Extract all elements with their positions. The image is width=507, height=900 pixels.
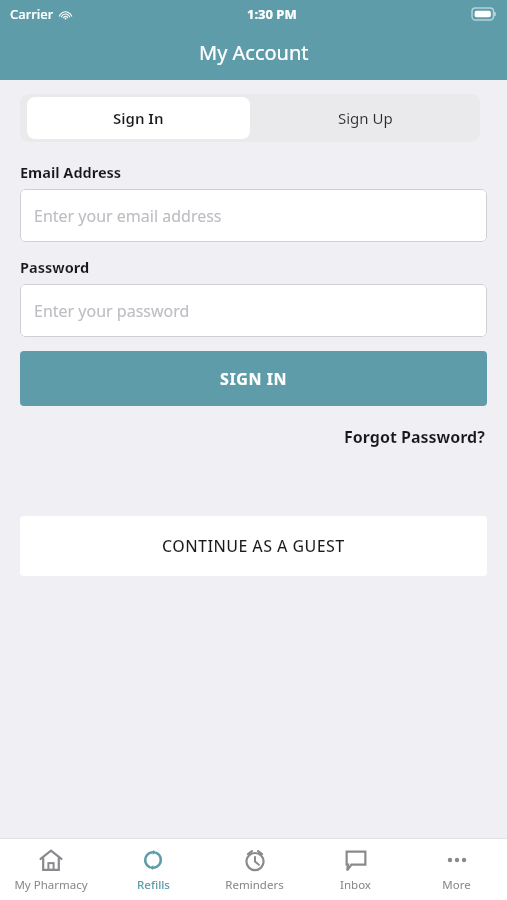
button[interactable]: Enter your password (20, 284, 487, 337)
button[interactable]: Enter your email address (20, 189, 487, 242)
button[interactable]: Reminders (204, 839, 305, 900)
staticText: SIGN IN (220, 368, 288, 390)
button[interactable]: Inbox (305, 839, 406, 900)
staticText: Reminders (225, 877, 284, 893)
staticText: Email Address (20, 162, 122, 182)
staticText: My Pharmacy (14, 877, 88, 893)
staticText: Password (20, 257, 90, 277)
staticText: Sign Up (338, 108, 393, 128)
staticText: Inbox (340, 877, 371, 893)
staticText: Enter your password (34, 300, 190, 322)
button[interactable]: Sign In (27, 97, 250, 139)
button[interactable]: CONTINUE AS A GUEST (20, 516, 487, 576)
staticText: Carrier (10, 5, 54, 23)
staticText: CONTINUE AS A GUEST (162, 535, 345, 557)
staticText: Forgot Password? (344, 426, 485, 448)
staticText: Enter your email address (34, 205, 222, 227)
button[interactable]: My Pharmacy (0, 839, 102, 900)
staticText: 1:30 PM (247, 5, 297, 23)
button[interactable]: Forgot Password? (342, 424, 487, 450)
button[interactable]: Sign Up (250, 94, 480, 142)
staticText: More (442, 877, 471, 893)
staticText: Refills (137, 877, 170, 893)
button[interactable]: Refills (102, 839, 204, 900)
button[interactable]: SIGN IN (20, 351, 487, 406)
staticText: My Account (199, 39, 309, 66)
staticText: Sign In (113, 108, 164, 128)
button[interactable]: More (406, 839, 507, 900)
